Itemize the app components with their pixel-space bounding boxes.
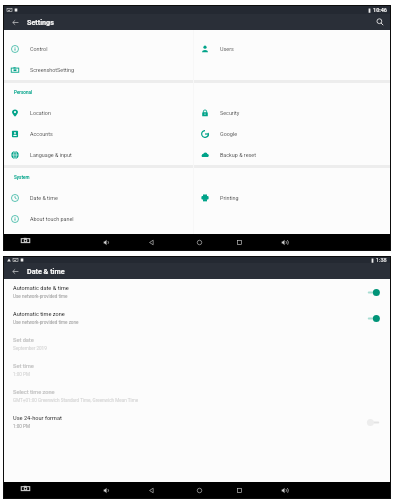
staticText: 1:00 PM (13, 372, 30, 377)
staticText: Use network-provided time zone (13, 320, 79, 325)
button[interactable]: Volume up (278, 484, 291, 497)
staticText: Use network-provided time (13, 294, 68, 299)
staticText: Accounts (30, 131, 53, 137)
button[interactable]: Home (193, 484, 206, 497)
staticText: GMT+01:00 Greenwich Standard Time, Green… (13, 398, 139, 403)
button[interactable]: Screenshot (19, 482, 32, 495)
staticText: Location (30, 110, 51, 116)
button[interactable]: Search (370, 14, 390, 30)
staticText: Control (30, 46, 48, 52)
button[interactable]: Back (4, 263, 27, 279)
button[interactable]: Set time (4, 357, 390, 383)
staticText: Personal (14, 90, 33, 95)
staticText: Settings (27, 18, 54, 26)
button[interactable]: Accounts (4, 123, 193, 144)
button[interactable]: Location (4, 102, 193, 123)
staticText: ScreenshotSetting (30, 67, 74, 73)
staticText: Automatic date & time (13, 285, 69, 292)
staticText: Users (220, 46, 234, 52)
staticText: 1:38 (376, 257, 387, 263)
button[interactable]: Volume down (100, 236, 113, 249)
button[interactable]: Select time zone (4, 383, 390, 409)
button[interactable]: Users (194, 38, 390, 59)
button[interactable]: Recents (233, 236, 246, 249)
button[interactable]: Back (4, 14, 27, 30)
button[interactable]: Toggle Automatic time zone (365, 311, 381, 325)
staticText: About touch panel (30, 216, 74, 222)
button[interactable]: About touch panel (4, 208, 193, 229)
button[interactable]: Backup & reset (194, 144, 390, 165)
staticText: 1:00 PM (13, 424, 30, 429)
button[interactable]: Toggle Use 24-hour format (365, 415, 381, 429)
button[interactable]: Set date (4, 331, 390, 357)
button[interactable]: Security (194, 102, 390, 123)
button[interactable]: Google (194, 123, 390, 144)
staticText: Set date (13, 337, 34, 344)
button[interactable]: Recents (233, 484, 246, 497)
button[interactable]: Automatic date & time (4, 279, 390, 305)
staticText: September 2019 (13, 346, 47, 351)
button[interactable]: Printing (194, 187, 390, 208)
staticText: Backup & reset (220, 152, 256, 158)
staticText: Use 24-hour format (13, 415, 62, 422)
button[interactable]: Back (145, 484, 158, 497)
staticText: Printing (220, 195, 239, 201)
button[interactable]: Language & input (4, 144, 193, 165)
staticText: Select time zone (13, 389, 55, 396)
button[interactable]: Back (145, 236, 158, 249)
staticText: Date & time (30, 195, 58, 201)
staticText: Security (220, 110, 240, 116)
button[interactable]: Automatic time zone (4, 305, 390, 331)
button[interactable]: Volume up (278, 236, 291, 249)
button[interactable]: Use 24-hour format (4, 409, 390, 435)
button[interactable]: Screenshot (19, 234, 32, 247)
staticText: Set time (13, 363, 34, 370)
staticText: 10:46 (373, 7, 387, 13)
button[interactable]: Control (4, 38, 193, 59)
button[interactable]: Toggle Automatic date & time (365, 285, 381, 299)
staticText: Language & input (30, 152, 72, 158)
staticText: Date & time (27, 267, 65, 275)
button[interactable]: Volume down (100, 484, 113, 497)
staticText: Automatic time zone (13, 311, 65, 318)
staticText: Google (220, 131, 238, 137)
button[interactable]: Home (193, 236, 206, 249)
staticText: System (14, 175, 30, 180)
button[interactable]: ScreenshotSetting (4, 59, 193, 80)
button[interactable]: Date & time (4, 187, 193, 208)
